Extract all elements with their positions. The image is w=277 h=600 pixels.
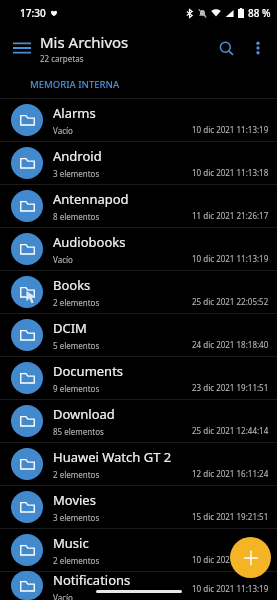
staticText: Vacío bbox=[53, 592, 73, 600]
staticText: Huawei Watch GT 2 bbox=[53, 448, 172, 466]
staticText: 10 dic 2021 11:13:19 bbox=[192, 124, 269, 135]
staticText: Alarms bbox=[53, 104, 96, 122]
button[interactable]: Books bbox=[0, 270, 277, 313]
staticText: 10 dic 2021 11:13:19 bbox=[192, 583, 269, 594]
staticText: Movies bbox=[53, 491, 96, 509]
staticText: 12 dic 2021 16:11:24 bbox=[192, 468, 269, 479]
staticText: DCIM bbox=[53, 319, 87, 337]
staticText: 2 elementos bbox=[53, 555, 100, 566]
staticText: 3 elementos bbox=[53, 512, 100, 523]
staticText: Download bbox=[53, 405, 115, 423]
staticText: 8 elementos bbox=[53, 211, 100, 222]
button[interactable]: Create new bbox=[230, 537, 271, 578]
staticText: Vacío bbox=[53, 254, 73, 265]
staticText: 88 % bbox=[248, 6, 271, 20]
staticText: 25 dic 2021 12:44:14 bbox=[192, 425, 269, 436]
button[interactable]: Alarms bbox=[0, 98, 277, 141]
staticText: 11 dic 2021 21:26:17 bbox=[192, 210, 269, 221]
staticText: 2 elementos bbox=[53, 297, 100, 308]
button[interactable]: Documents bbox=[0, 356, 277, 399]
staticText: Mis Archivos bbox=[40, 32, 129, 52]
button[interactable]: Open navigation menu bbox=[6, 32, 38, 64]
button[interactable]: Search bbox=[209, 31, 243, 65]
staticText: Android bbox=[53, 147, 102, 165]
staticText: 24 dic 2021 18:18:40 bbox=[192, 339, 269, 350]
button[interactable]: Music bbox=[0, 528, 277, 571]
button[interactable]: Android bbox=[0, 141, 277, 184]
staticText: Music bbox=[53, 534, 89, 552]
staticText: Notifications bbox=[53, 571, 131, 589]
button[interactable]: DCIM bbox=[0, 313, 277, 356]
staticText: 10 dic 2021 11:13:19 bbox=[192, 253, 269, 264]
staticText: MEMORIA INTERNA bbox=[30, 78, 120, 91]
staticText: Books bbox=[53, 276, 91, 294]
staticText: 15 dic 2021 19:21:51 bbox=[192, 511, 269, 522]
staticText: 10 dic 2021 11:13:18 bbox=[192, 167, 269, 178]
button[interactable]: Audiobooks bbox=[0, 227, 277, 270]
staticText: 10 dic 2021 11:13:18 bbox=[192, 554, 269, 565]
staticText: Vacío bbox=[53, 125, 73, 136]
staticText: 22 carpetas bbox=[40, 53, 84, 64]
button[interactable]: Download bbox=[0, 399, 277, 442]
staticText: Audiobooks bbox=[53, 233, 126, 251]
button[interactable]: More options bbox=[243, 33, 273, 63]
staticText: 3 elementos bbox=[53, 168, 100, 179]
button[interactable]: Antennapod bbox=[0, 184, 277, 227]
button[interactable]: Movies bbox=[0, 485, 277, 528]
button[interactable]: Huawei Watch GT 2 bbox=[0, 442, 277, 485]
staticText: 23 dic 2021 19:11:51 bbox=[192, 382, 269, 393]
staticText: 85 elementos bbox=[53, 426, 104, 437]
staticText: 25 dic 2021 22:05:52 bbox=[192, 296, 269, 307]
staticText: Documents bbox=[53, 362, 124, 380]
staticText: 2 elementos bbox=[53, 469, 100, 480]
staticText: 17:30 bbox=[20, 6, 46, 20]
staticText: 9 elementos bbox=[53, 383, 100, 394]
button[interactable]: Notifications bbox=[0, 571, 277, 600]
staticText: 5 elementos bbox=[53, 340, 100, 351]
staticText: Antennapod bbox=[53, 190, 129, 208]
